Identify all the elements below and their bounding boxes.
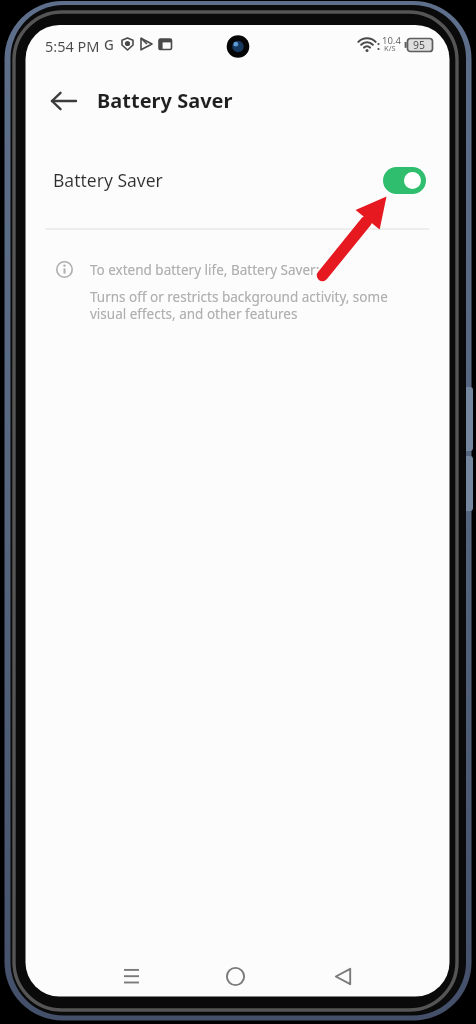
button[interactable] bbox=[320, 958, 366, 994]
staticText: Battery Saver bbox=[53, 168, 163, 192]
staticText: To extend battery life, Battery Saver: bbox=[90, 261, 320, 279]
button[interactable] bbox=[42, 84, 86, 118]
button[interactable] bbox=[212, 958, 258, 994]
button[interactable] bbox=[108, 958, 154, 994]
staticText: Turns off or restricts background activi… bbox=[90, 288, 388, 323]
button[interactable]: Battery Saver bbox=[25, 155, 449, 205]
staticText: K/S bbox=[384, 43, 396, 53]
staticText: 5:54 PM bbox=[45, 36, 100, 56]
staticText: G bbox=[104, 36, 114, 54]
button[interactable] bbox=[383, 167, 426, 194]
staticText: 95 bbox=[413, 38, 426, 52]
staticText: 10.4 bbox=[382, 34, 401, 47]
staticText: Battery Saver bbox=[97, 87, 233, 114]
